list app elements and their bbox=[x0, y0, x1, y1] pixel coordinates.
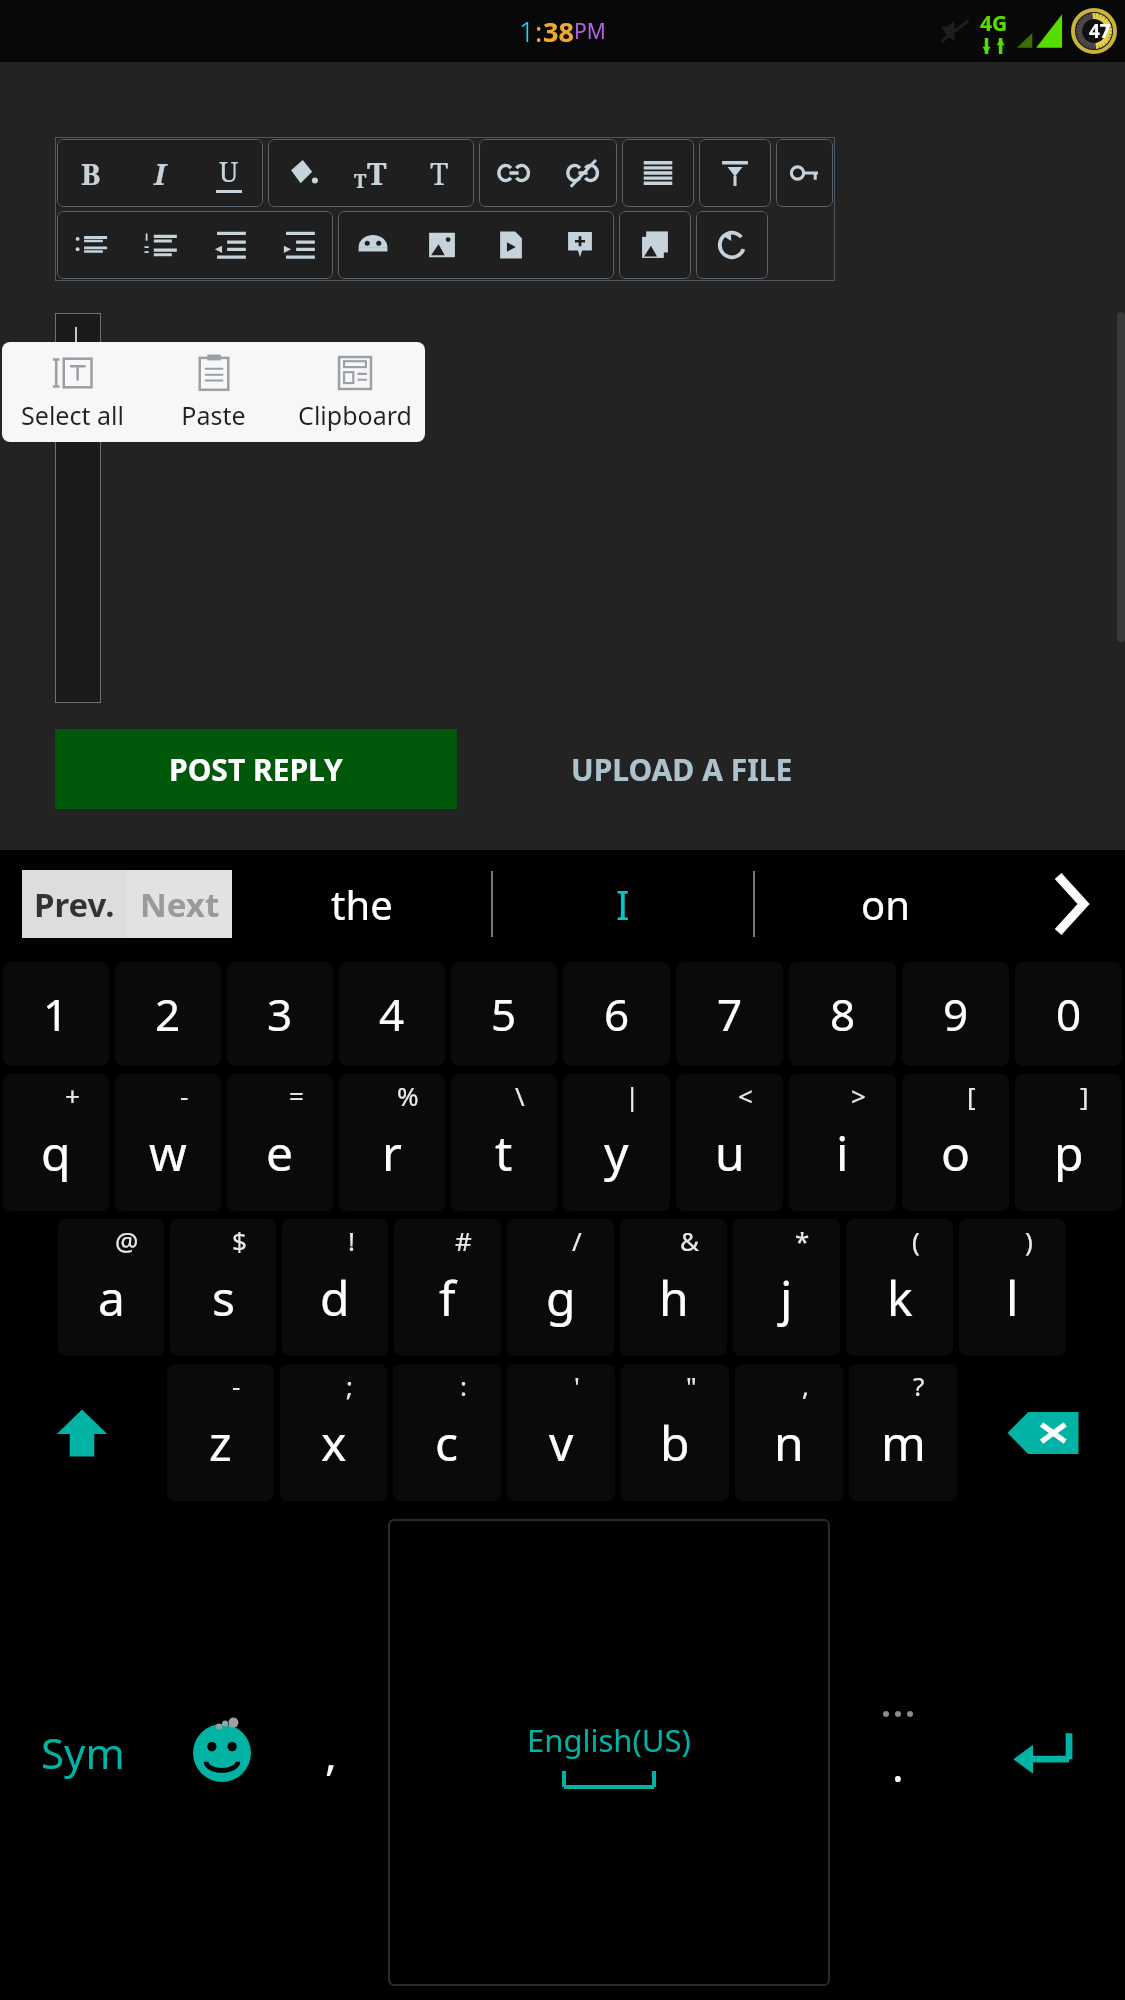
button[interactable]: fill bbox=[268, 139, 336, 207]
button[interactable]: % bbox=[339, 1074, 445, 1211]
button[interactable]: 9 bbox=[902, 962, 1009, 1066]
button[interactable]: UPLOAD A FILE bbox=[457, 729, 907, 809]
button[interactable]: 6 bbox=[563, 962, 670, 1066]
button[interactable]: 4 bbox=[339, 962, 445, 1066]
button[interactable]: : bbox=[393, 1364, 501, 1501]
button[interactable]: I bbox=[125, 139, 194, 207]
button[interactable]: ; bbox=[280, 1364, 387, 1501]
button[interactable]: $ bbox=[170, 1219, 276, 1356]
button[interactable]: outd bbox=[195, 211, 264, 279]
button[interactable]: 0 bbox=[1015, 962, 1122, 1066]
staticText: 6 bbox=[604, 984, 630, 1044]
staticText: Sym bbox=[41, 1724, 125, 1781]
button[interactable]: @ bbox=[58, 1219, 164, 1356]
staticText: q bbox=[41, 1120, 71, 1185]
button[interactable]: I bbox=[493, 850, 753, 958]
staticText: I bbox=[616, 877, 630, 931]
button[interactable]: ( bbox=[846, 1219, 953, 1356]
button[interactable]: < bbox=[676, 1074, 783, 1211]
button[interactable]: ) bbox=[959, 1219, 1066, 1356]
staticText: z bbox=[209, 1410, 232, 1475]
button[interactable]: & bbox=[620, 1219, 727, 1356]
button[interactable]: B bbox=[57, 139, 125, 207]
button[interactable]: Select all bbox=[2, 342, 143, 442]
staticText: . bbox=[892, 1735, 904, 1795]
button[interactable]: ! bbox=[282, 1219, 388, 1356]
button[interactable]: + bbox=[3, 1074, 109, 1211]
staticText: e bbox=[266, 1120, 294, 1185]
button[interactable]: unlink bbox=[548, 139, 617, 207]
button[interactable]: undo bbox=[696, 211, 768, 279]
button[interactable]: / bbox=[507, 1219, 614, 1356]
button[interactable]: 8 bbox=[789, 962, 896, 1066]
button[interactable]: English(US) bbox=[388, 1519, 830, 1986]
staticText: $ bbox=[232, 1223, 247, 1258]
button[interactable]: * bbox=[733, 1219, 840, 1356]
button[interactable] bbox=[55, 313, 101, 703]
button[interactable]: vid bbox=[476, 211, 545, 279]
button[interactable]: " bbox=[621, 1364, 729, 1501]
button[interactable]: Emoji bbox=[165, 1505, 279, 2000]
button[interactable]: | bbox=[563, 1074, 670, 1211]
staticText: i bbox=[836, 1120, 849, 1185]
button[interactable]: clear bbox=[699, 139, 771, 207]
button[interactable]: [ bbox=[902, 1074, 1009, 1211]
button[interactable]: ins bbox=[545, 211, 614, 279]
button[interactable]: POST REPLY bbox=[55, 729, 457, 809]
staticText: English(US) bbox=[527, 1719, 691, 1761]
staticText: y bbox=[604, 1120, 629, 1185]
button[interactable]: - bbox=[115, 1074, 221, 1211]
button[interactable]: ind bbox=[264, 211, 333, 279]
button[interactable]: img bbox=[407, 211, 476, 279]
button[interactable]: Next bbox=[127, 870, 232, 938]
button[interactable]: TT bbox=[336, 139, 405, 207]
button[interactable]: T bbox=[405, 139, 474, 207]
button[interactable]: # bbox=[394, 1219, 501, 1356]
staticText: / bbox=[572, 1223, 582, 1258]
button[interactable]: key bbox=[776, 139, 833, 207]
button[interactable]: \ bbox=[451, 1074, 557, 1211]
staticText: & bbox=[680, 1223, 700, 1258]
button[interactable]: . bbox=[836, 1505, 960, 2000]
staticText: + bbox=[65, 1078, 80, 1113]
button[interactable]: ul bbox=[57, 211, 126, 279]
button[interactable]: Clipboard bbox=[284, 342, 425, 442]
button[interactable]: just bbox=[622, 139, 694, 207]
button[interactable]: ' bbox=[507, 1364, 615, 1501]
button[interactable]: , bbox=[735, 1364, 843, 1501]
staticText: 7 bbox=[717, 984, 743, 1044]
button[interactable]: on bbox=[755, 850, 1015, 958]
button[interactable]: Prev. bbox=[22, 870, 127, 938]
button[interactable]: More suggestions bbox=[1015, 850, 1125, 958]
staticText: [ bbox=[967, 1078, 976, 1113]
button[interactable]: = bbox=[227, 1074, 333, 1211]
button[interactable]: the bbox=[232, 850, 491, 958]
staticText: 5 bbox=[491, 984, 517, 1044]
button[interactable]: Enter bbox=[960, 1505, 1125, 2000]
staticText: p bbox=[1054, 1120, 1084, 1185]
staticText: d bbox=[320, 1265, 350, 1330]
staticText: % bbox=[397, 1078, 419, 1113]
button[interactable]: 5 bbox=[451, 962, 557, 1066]
button[interactable]: 3 bbox=[227, 962, 333, 1066]
button[interactable]: Paste bbox=[143, 342, 284, 442]
button[interactable]: emoji bbox=[338, 211, 407, 279]
staticText: > bbox=[851, 1078, 866, 1113]
button[interactable]: 7 bbox=[676, 962, 783, 1066]
button[interactable]: 2 bbox=[115, 962, 221, 1066]
button[interactable]: , bbox=[279, 1505, 382, 2000]
button[interactable]: - bbox=[167, 1364, 274, 1501]
button[interactable]: > bbox=[789, 1074, 896, 1211]
button[interactable]: Backspace bbox=[960, 1360, 1125, 1505]
button[interactable]: 1 bbox=[3, 962, 109, 1066]
button[interactable]: Shift bbox=[0, 1360, 164, 1505]
button[interactable]: ? bbox=[849, 1364, 957, 1501]
button[interactable]: ol bbox=[126, 211, 195, 279]
button[interactable]: gal bbox=[619, 211, 691, 279]
staticText: ] bbox=[1080, 1078, 1089, 1113]
staticText: s bbox=[212, 1265, 235, 1330]
button[interactable]: Sym bbox=[0, 1505, 165, 2000]
button[interactable]: U bbox=[194, 139, 263, 207]
button[interactable]: link bbox=[479, 139, 548, 207]
button[interactable]: ] bbox=[1015, 1074, 1122, 1211]
